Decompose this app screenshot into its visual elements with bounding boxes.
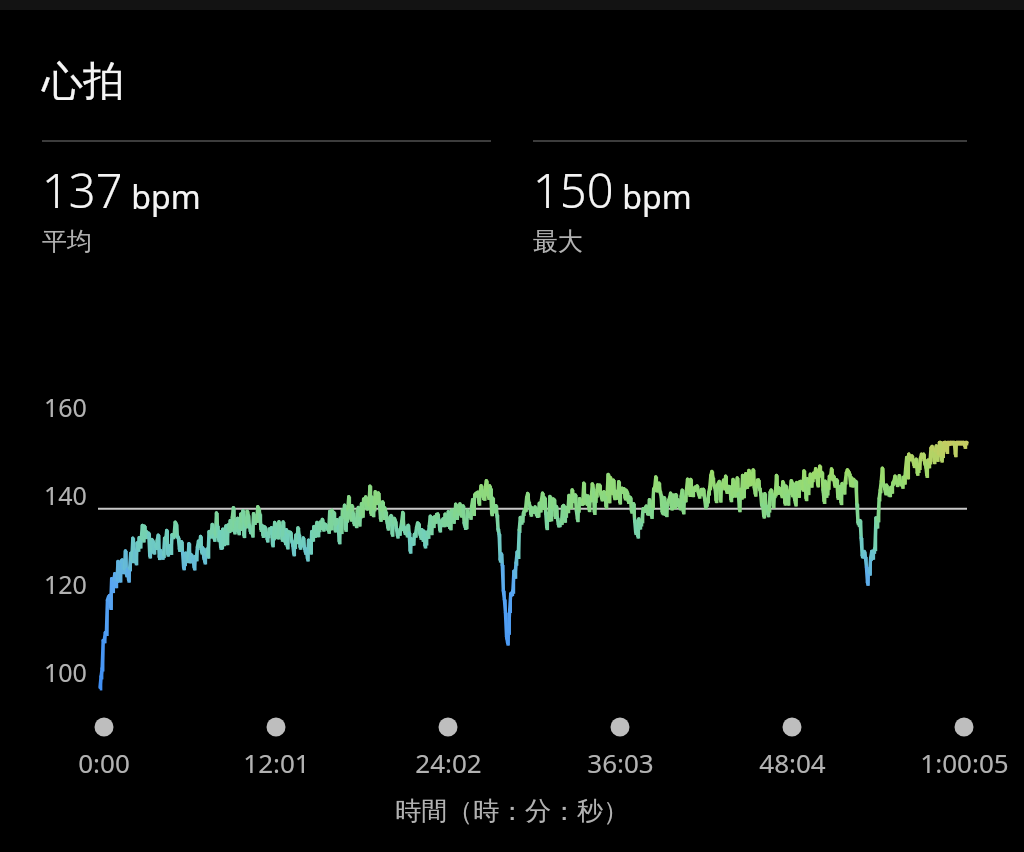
staticText: 140	[44, 478, 87, 512]
staticText: 1:00:05	[920, 745, 1009, 780]
staticText: 12:01	[243, 745, 310, 780]
staticText: 24:02	[415, 745, 482, 780]
staticText: 48:04	[759, 745, 826, 780]
staticText: 最大	[533, 226, 583, 257]
staticText: bpm	[123, 175, 201, 219]
other: Heart rate chart	[0, 0, 1024, 852]
staticText: 36:03	[587, 745, 654, 780]
button[interactable]: 150	[533, 140, 967, 257]
button[interactable]: 137	[42, 140, 491, 257]
staticText: 137	[42, 158, 123, 222]
button[interactable]: 心拍	[42, 56, 124, 108]
staticText: 160	[44, 390, 87, 424]
staticText: 100	[44, 655, 87, 689]
staticText: 0:00	[78, 745, 130, 780]
staticText: 平均	[42, 226, 92, 257]
staticText: 時間（時：分：秒）	[395, 795, 629, 828]
staticText: 120	[44, 567, 87, 601]
staticText: bpm	[614, 175, 692, 219]
staticText: 150	[533, 158, 614, 222]
